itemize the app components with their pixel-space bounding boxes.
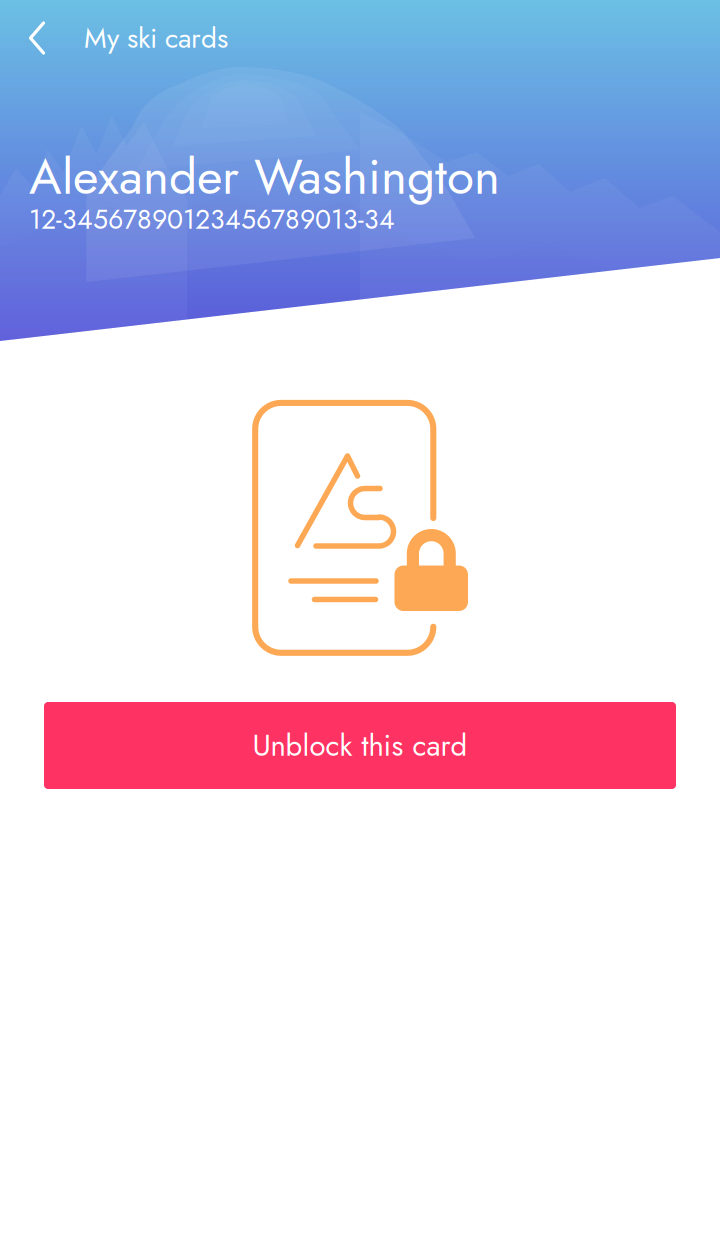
button[interactable]: Back bbox=[0, 0, 73, 76]
staticText: My ski cards bbox=[84, 18, 228, 58]
button[interactable]: Unblock this card bbox=[44, 702, 676, 789]
staticText: Unblock this card bbox=[252, 724, 467, 767]
staticText: 12-34567890123456789013-34 bbox=[29, 200, 395, 239]
staticText: Alexander Washington bbox=[29, 141, 500, 212]
